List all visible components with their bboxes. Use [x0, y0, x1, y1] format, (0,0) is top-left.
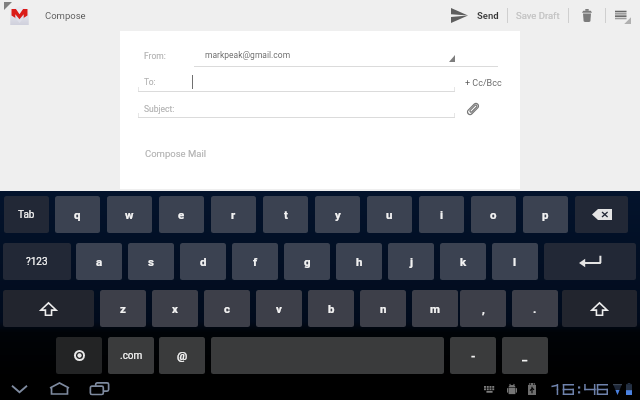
button[interactable]: w — [107, 196, 152, 233]
button[interactable]: _ — [502, 337, 548, 374]
button[interactable]: g — [284, 243, 330, 280]
staticText: n — [380, 302, 387, 315]
staticText: @ — [177, 349, 188, 362]
staticText: To: — [144, 77, 156, 87]
staticText: j — [410, 255, 413, 268]
button[interactable]: j — [388, 243, 434, 280]
button[interactable]: More options — [612, 0, 634, 31]
button[interactable]: ?123 — [3, 243, 71, 280]
button[interactable]: a — [76, 243, 122, 280]
staticText: Compose — [45, 10, 86, 21]
button[interactable]: Discard — [576, 0, 598, 31]
staticText: x — [172, 302, 178, 315]
button[interactable]: Home — [45, 377, 73, 400]
button[interactable]: Shift — [3, 290, 94, 327]
button[interactable]: q — [55, 196, 100, 233]
staticText: f — [253, 255, 258, 268]
button[interactable]: Back — [5, 377, 33, 400]
staticText: s — [148, 255, 154, 268]
staticText: + Cc/Bcc — [465, 78, 502, 89]
button[interactable]: Compose — [9, 0, 86, 31]
button[interactable]: i — [419, 196, 464, 233]
button[interactable]: f — [232, 243, 278, 280]
other: Shift — [591, 302, 608, 316]
other: Enter — [579, 254, 602, 269]
staticText: l — [513, 255, 517, 268]
button[interactable]: y — [315, 196, 360, 233]
button[interactable]: Tab — [4, 196, 49, 233]
staticText: b — [328, 302, 335, 315]
button[interactable]: @ — [159, 337, 205, 374]
staticText: m — [430, 302, 440, 315]
staticText: z — [120, 302, 126, 315]
button[interactable]: Backspace — [575, 196, 628, 233]
button[interactable]: b — [308, 290, 354, 327]
button[interactable]: e — [159, 196, 204, 233]
staticText: i — [440, 208, 444, 221]
staticText: v — [276, 302, 282, 315]
other: Backspace — [592, 209, 612, 220]
staticText: a — [96, 255, 103, 268]
button[interactable]: Shift — [562, 290, 637, 327]
staticText: p — [542, 208, 549, 221]
staticText: t — [284, 208, 288, 221]
button[interactable]: l — [492, 243, 538, 280]
button[interactable]: n — [360, 290, 406, 327]
staticText: - — [471, 349, 476, 362]
staticText: g — [304, 255, 311, 268]
button[interactable]: - — [450, 337, 496, 374]
staticText: k — [460, 255, 467, 268]
staticText: o — [490, 208, 497, 221]
staticText: d — [200, 255, 207, 268]
other: Settings — [74, 350, 85, 361]
button[interactable]: , — [460, 290, 506, 327]
button[interactable]: u — [367, 196, 412, 233]
button[interactable]: m — [412, 290, 458, 327]
button[interactable]: r — [211, 196, 256, 233]
staticText: y — [335, 208, 341, 221]
staticText: h — [356, 255, 363, 268]
button[interactable]: x — [152, 290, 198, 327]
button[interactable]: d — [180, 243, 226, 280]
staticText: u — [386, 208, 393, 221]
button[interactable]: k — [440, 243, 486, 280]
button[interactable]: .com — [108, 337, 154, 374]
staticText: Save Draft — [516, 10, 560, 21]
button[interactable]: Send — [451, 0, 499, 31]
button[interactable]: o — [471, 196, 516, 233]
staticText: r — [231, 208, 236, 221]
button[interactable]: Enter — [544, 243, 636, 280]
button[interactable]: h — [336, 243, 382, 280]
staticText: From: — [144, 51, 166, 61]
staticText: . — [533, 302, 537, 315]
button[interactable]: z — [100, 290, 146, 327]
staticText: markpeak@gmail.com — [205, 50, 291, 60]
button[interactable]: Settings — [56, 337, 102, 374]
staticText: Tab — [18, 209, 35, 221]
staticText: , — [482, 302, 485, 315]
button[interactable]: s — [128, 243, 174, 280]
staticText: q — [74, 208, 81, 221]
button[interactable]: p — [523, 196, 568, 233]
other: Shift — [40, 302, 57, 316]
button[interactable]: v — [256, 290, 302, 327]
button[interactable]: + Cc/Bcc — [460, 75, 507, 92]
staticText: _ — [522, 349, 528, 362]
staticText: e — [178, 208, 185, 221]
staticText: Compose Mail — [145, 148, 207, 159]
staticText: ?123 — [26, 256, 48, 268]
staticText: w — [125, 208, 134, 221]
staticText: .com — [120, 350, 143, 362]
staticText: Send — [477, 10, 499, 21]
staticText: Subject: — [144, 104, 175, 114]
button[interactable]: Attach file — [462, 98, 484, 120]
button[interactable]: Recent apps — [85, 377, 113, 400]
button[interactable]: t — [263, 196, 308, 233]
button[interactable]: . — [512, 290, 558, 327]
button[interactable]: c — [204, 290, 250, 327]
button[interactable]: Save Draft — [516, 0, 560, 31]
staticText: c — [224, 302, 231, 315]
